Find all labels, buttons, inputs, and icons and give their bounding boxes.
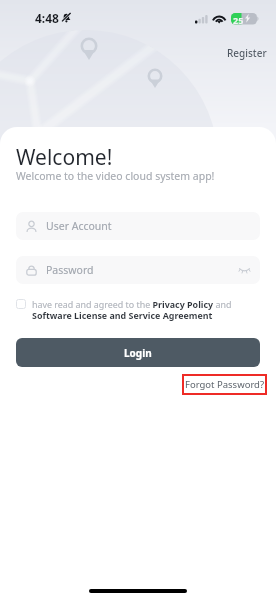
staticText: Register [227,46,267,60]
staticText: Login [124,346,152,360]
staticText: 25 [233,14,244,26]
staticText: Welcome! [16,143,113,172]
staticText: Password [46,263,94,277]
button[interactable]: Password [25,256,250,284]
button[interactable]: Login [16,338,260,367]
staticText: User Account [46,219,112,233]
button[interactable]: Agree to terms [16,299,26,309]
button[interactable]: Register [215,40,276,66]
staticText: Forgot Password? [185,378,265,391]
button[interactable]: User Account [25,212,250,240]
button[interactable]: Show password [239,266,250,274]
staticText: have read and agreed to the Privacy Poli… [32,298,242,322]
staticText: Welcome to the video cloud system app! [16,169,215,183]
staticText: 4:48 [35,10,59,26]
button[interactable]: Forgot Password? [182,374,267,395]
